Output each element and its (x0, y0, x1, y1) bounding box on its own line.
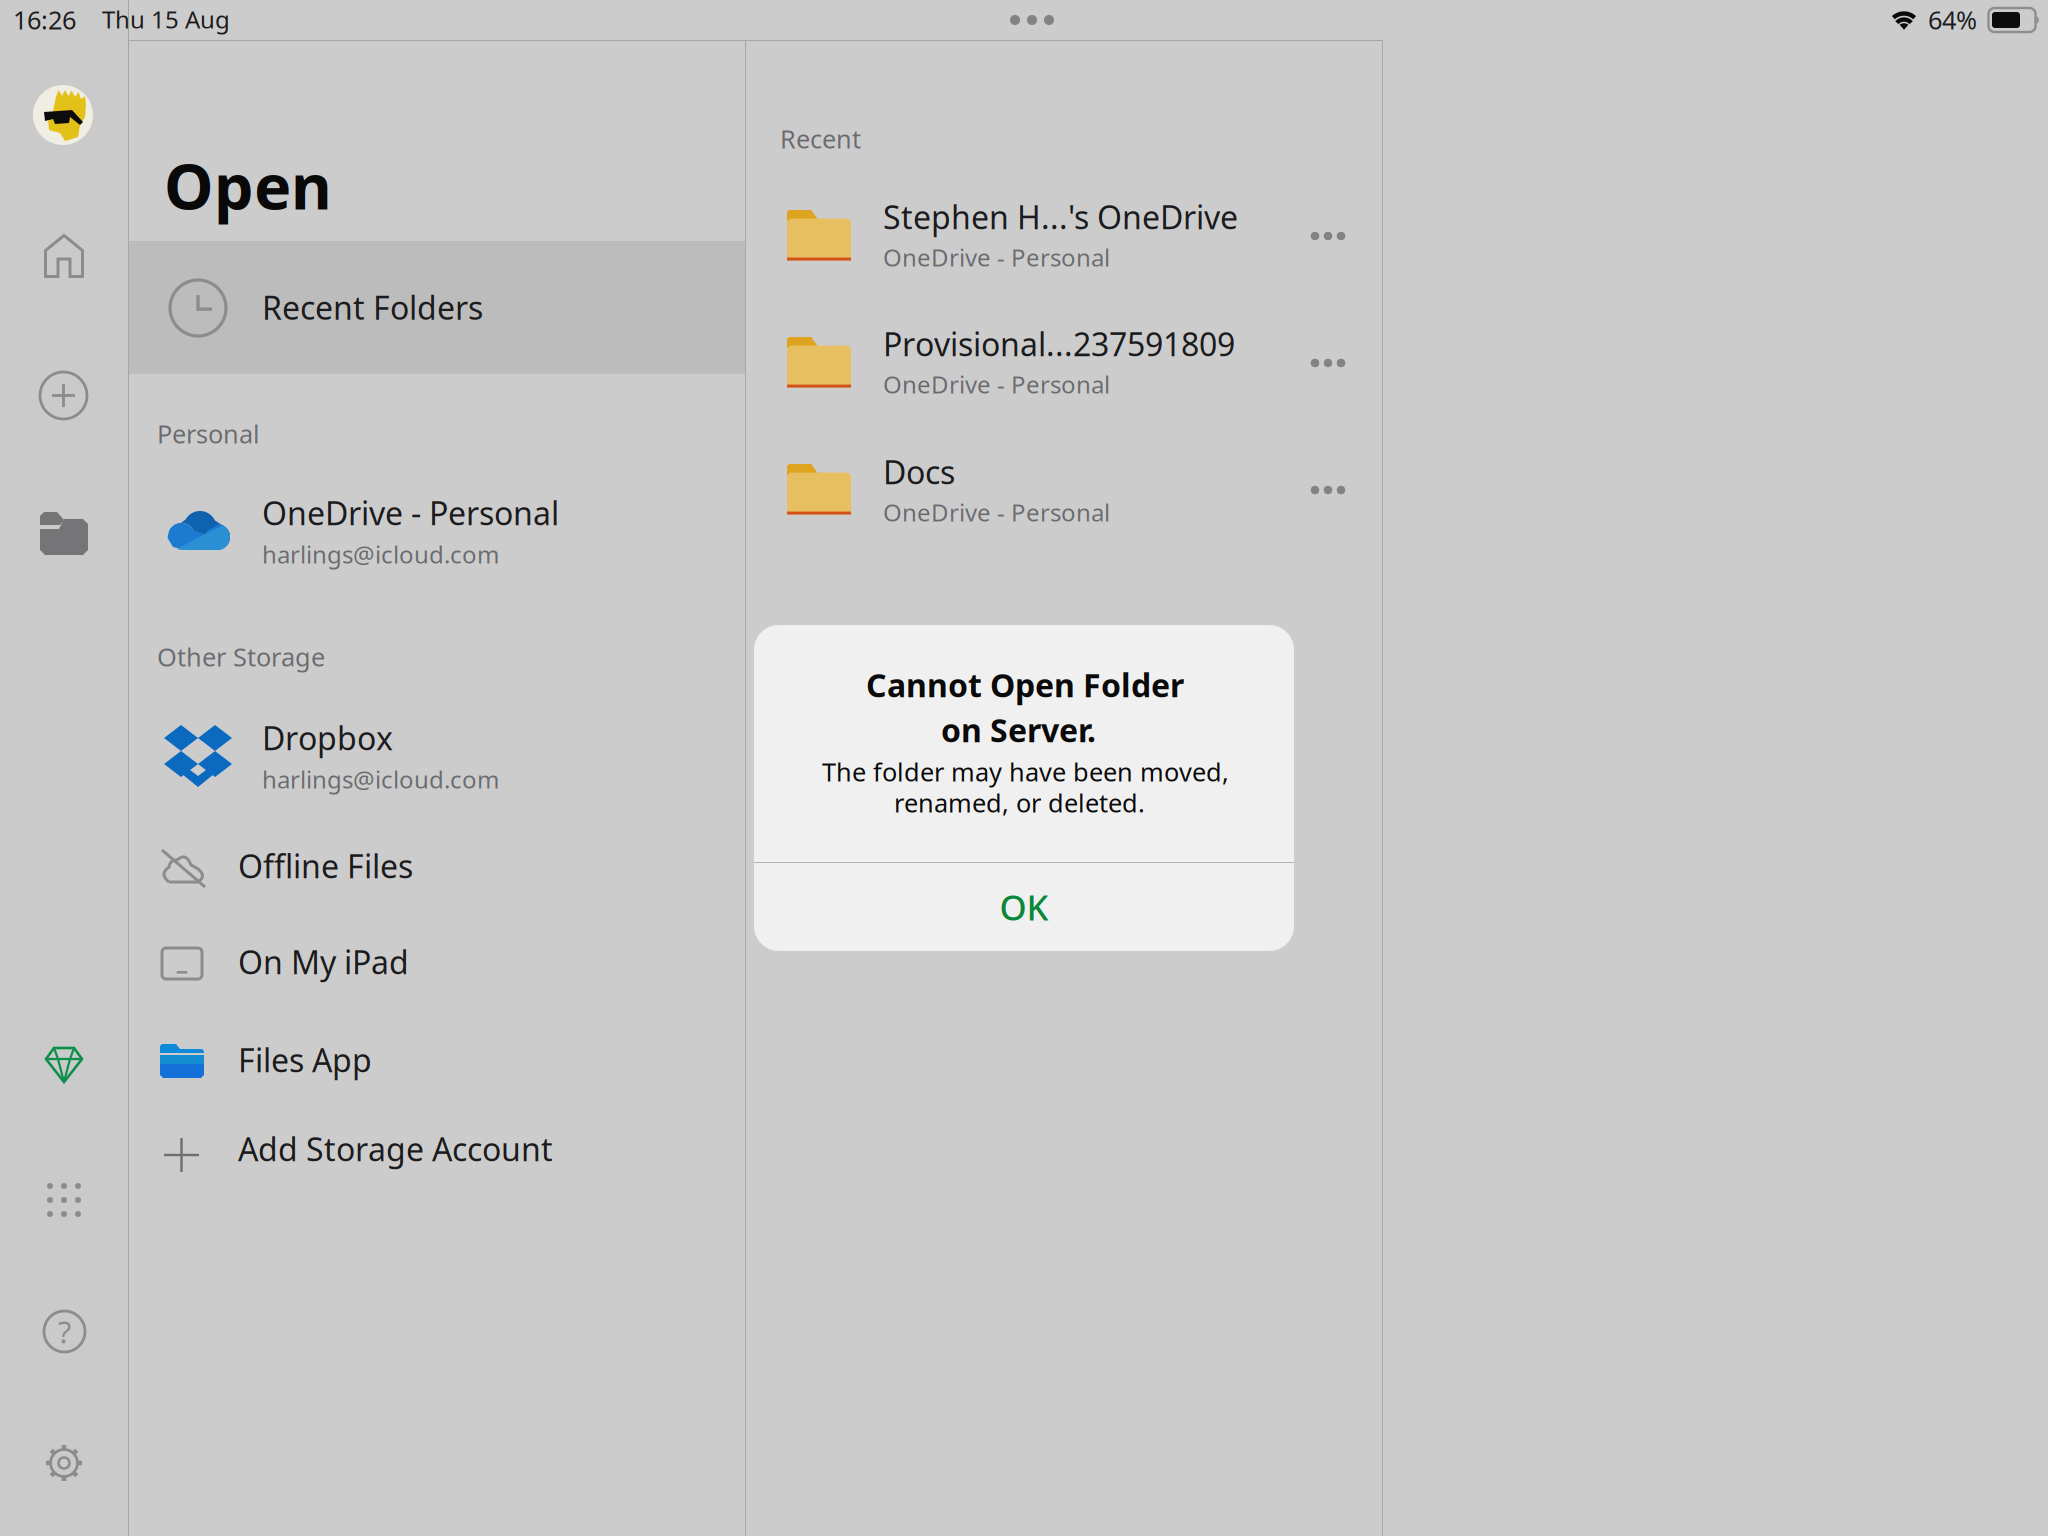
button[interactable]: On My iPad (129, 940, 745, 1004)
staticText: harlings@icloud.com (262, 763, 499, 795)
staticText: Recent (780, 122, 861, 155)
button[interactable]: Help (44, 1311, 85, 1352)
staticText: Docs (883, 451, 955, 493)
staticText: Files App (238, 1039, 372, 1081)
button[interactable]: Add Storage Account (129, 1122, 745, 1186)
button[interactable]: Settings (45, 1444, 83, 1482)
staticText: harlings@icloud.com (262, 538, 499, 570)
button[interactable]: Account (33, 85, 93, 145)
staticText: renamed, or deleted. (894, 786, 1145, 819)
staticText: Stephen H...'s OneDrive (883, 196, 1238, 238)
button[interactable]: Premium (45, 1046, 83, 1084)
staticText: OK (999, 884, 1048, 930)
button[interactable]: Apps (45, 1181, 83, 1219)
button[interactable]: More options (1290, 468, 1366, 512)
staticText: OneDrive - Personal (883, 368, 1110, 400)
staticText: Open (164, 144, 332, 227)
button[interactable]: Docs (746, 430, 1266, 548)
staticText: Dropbox (262, 717, 393, 759)
button[interactable]: Open (40, 512, 88, 556)
button[interactable]: Dropbox (129, 710, 745, 800)
staticText: on Server. (941, 709, 1096, 751)
staticText: ? (58, 1311, 71, 1352)
button[interactable]: Recent Folders (129, 241, 745, 374)
button[interactable]: More options (1290, 214, 1366, 258)
staticText: Provisional...237591809 (883, 323, 1235, 365)
staticText: OneDrive - Personal (262, 492, 559, 534)
button[interactable]: Files App (129, 1036, 745, 1100)
staticText: Offline Files (238, 845, 413, 887)
button[interactable]: OneDrive - Personal (129, 488, 745, 576)
button[interactable]: Home (44, 234, 84, 278)
staticText: The folder may have been moved, (822, 755, 1229, 788)
staticText: Add Storage Account (238, 1128, 553, 1170)
staticText: OneDrive - Personal (883, 241, 1110, 273)
staticText: Personal (157, 417, 260, 450)
staticText: 64% (1928, 3, 1977, 36)
staticText: Thu 15 Aug (102, 3, 230, 35)
button[interactable]: Provisional...237591809 (746, 302, 1266, 420)
button[interactable]: More options (1290, 341, 1366, 385)
button[interactable]: Offline Files (129, 840, 745, 904)
staticText: Other Storage (157, 640, 325, 673)
button[interactable]: OK (754, 863, 1294, 951)
staticText: On My iPad (238, 941, 409, 983)
staticText: OneDrive - Personal (883, 496, 1110, 528)
button[interactable]: Stephen H...'s OneDrive (746, 175, 1266, 293)
staticText: Recent Folders (262, 286, 483, 328)
staticText: 16:26 (13, 3, 76, 36)
button[interactable]: Create (40, 372, 87, 419)
staticText: Cannot Open Folder (866, 664, 1184, 706)
